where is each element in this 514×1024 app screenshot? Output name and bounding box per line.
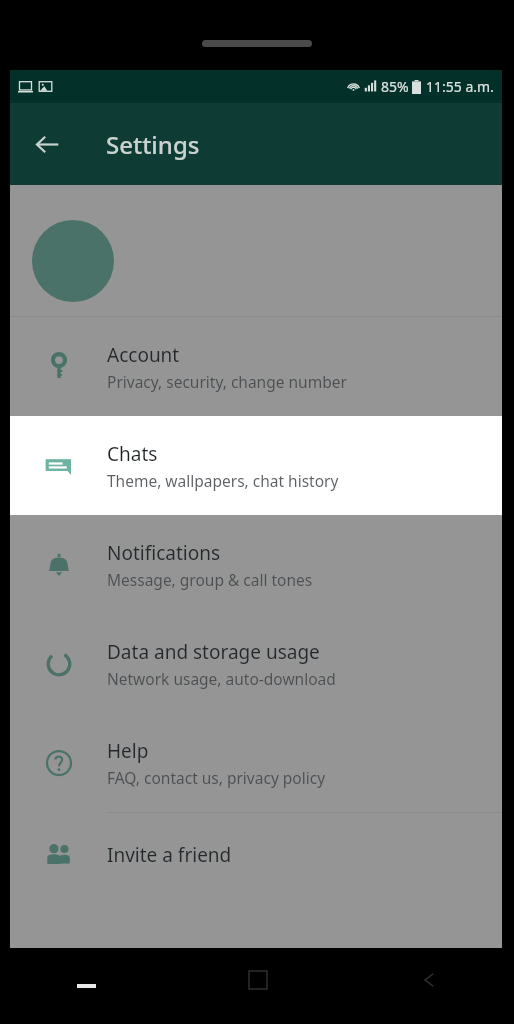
button[interactable]: Chats: [10, 416, 502, 515]
staticText: Notifications: [107, 540, 221, 566]
button[interactable]: Home: [172, 948, 343, 1024]
staticText: Message, group & call tones: [107, 569, 313, 590]
staticText: Network usage, auto-download: [107, 668, 336, 689]
staticText: Account: [107, 342, 180, 368]
button[interactable]: [10, 185, 502, 316]
staticText: Chats: [107, 441, 158, 467]
button[interactable]: Back: [24, 121, 70, 167]
button[interactable]: Data and storage usage: [10, 614, 502, 713]
staticText: Help: [107, 738, 149, 764]
button[interactable]: Invite a friend: [10, 813, 502, 897]
staticText: FAQ, contact us, privacy policy: [107, 767, 326, 788]
staticText: Invite a friend: [107, 842, 232, 868]
button[interactable]: Recents: [0, 948, 172, 1024]
staticText: 11:55 a.m.: [426, 77, 494, 96]
button[interactable]: Notifications: [10, 515, 502, 614]
staticText: 85%: [381, 77, 409, 96]
button[interactable]: Account: [10, 317, 502, 416]
staticText: Data and storage usage: [107, 639, 320, 665]
button[interactable]: Help: [10, 713, 502, 812]
staticText: Privacy, security, change number: [107, 371, 347, 392]
staticText: Settings: [106, 128, 200, 161]
staticText: Theme, wallpapers, chat history: [107, 470, 339, 491]
